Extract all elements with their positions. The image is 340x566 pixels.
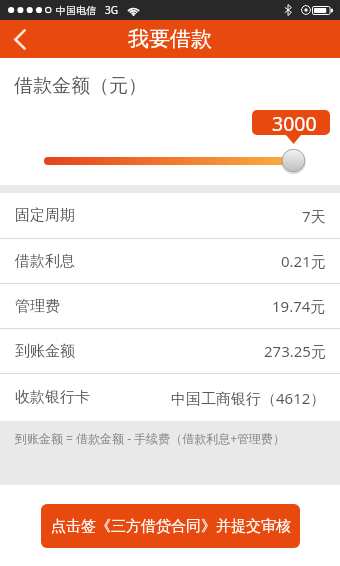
button[interactable]: Amount slider: [281, 148, 306, 173]
button[interactable]: 收款银行卡: [0, 374, 340, 421]
staticText: 19.74元: [272, 296, 326, 316]
staticText: 点击签《三方借贷合同》并提交审核: [51, 517, 291, 536]
staticText: 我要借款: [128, 26, 212, 52]
staticText: 借款利息: [15, 252, 75, 271]
button[interactable]: 固定周期: [0, 193, 340, 238]
staticText: 收款银行卡: [15, 388, 90, 407]
button[interactable]: 管理费: [0, 284, 340, 328]
staticText: 3000: [272, 110, 317, 135]
staticText: 借款金额（元）: [14, 74, 147, 98]
staticText: 固定周期: [15, 206, 75, 225]
staticText: 0.21元: [281, 251, 326, 271]
button[interactable]: Back: [0, 20, 40, 58]
button[interactable]: 借款利息: [0, 239, 340, 283]
staticText: 中国工商银行（4612）: [171, 388, 326, 408]
staticText: 到账金额 = 借款金额 - 手续费（借款利息+管理费）: [15, 430, 286, 446]
staticText: 3G: [105, 3, 118, 17]
staticText: 管理费: [15, 297, 60, 316]
button[interactable]: 到账金额: [0, 329, 340, 373]
staticText: 7天: [302, 206, 326, 226]
staticText: 到账金额: [15, 342, 75, 361]
staticText: 273.25元: [264, 341, 326, 361]
button[interactable]: 点击签《三方借贷合同》并提交审核: [41, 504, 300, 548]
staticText: 中国电信: [56, 4, 96, 17]
